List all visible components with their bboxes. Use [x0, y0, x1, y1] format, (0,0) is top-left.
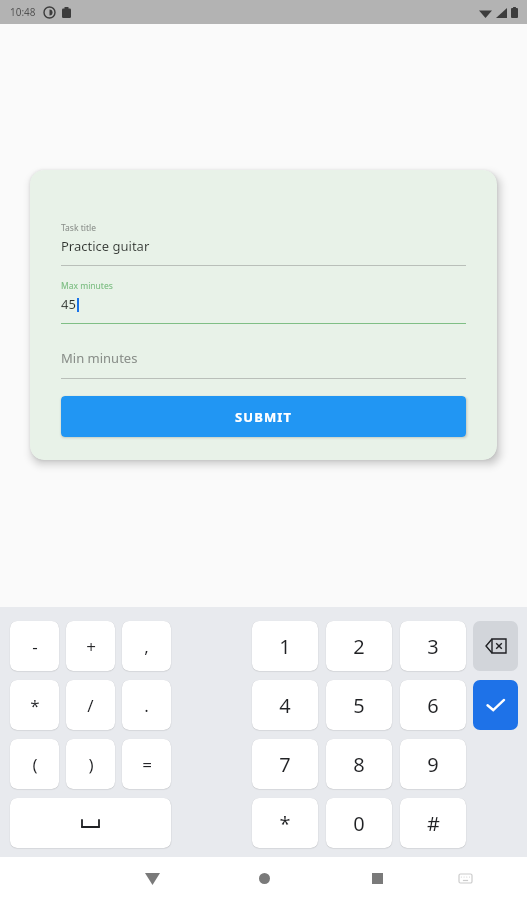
- button[interactable]: Back: [131, 857, 173, 900]
- button[interactable]: 1: [252, 621, 318, 671]
- button[interactable]: Switch keyboard: [447, 857, 483, 900]
- button[interactable]: 0: [326, 798, 392, 848]
- staticText: 9: [427, 751, 439, 778]
- button[interactable]: #: [400, 798, 466, 848]
- button[interactable]: Max minutes: [61, 280, 466, 324]
- staticText: Practice guitar: [61, 237, 150, 255]
- staticText: ): [88, 753, 94, 776]
- staticText: (: [32, 753, 38, 776]
- button[interactable]: -: [10, 621, 59, 671]
- staticText: *: [30, 694, 40, 717]
- button[interactable]: Home: [243, 857, 285, 900]
- staticText: Min minutes: [61, 349, 138, 367]
- staticText: 7: [279, 751, 291, 778]
- staticText: 0: [353, 810, 365, 837]
- staticText: *: [279, 810, 291, 837]
- button[interactable]: +: [66, 621, 115, 671]
- staticText: #: [427, 810, 440, 837]
- staticText: Max minutes: [61, 280, 113, 292]
- staticText: 3: [427, 633, 439, 660]
- staticText: 8: [353, 751, 365, 778]
- button[interactable]: *: [10, 680, 59, 730]
- staticText: 10:48: [10, 5, 36, 19]
- button[interactable]: .: [122, 680, 171, 730]
- staticText: Task title: [61, 222, 96, 234]
- button[interactable]: 2: [326, 621, 392, 671]
- button[interactable]: Space: [10, 798, 171, 848]
- button[interactable]: ): [66, 739, 115, 789]
- button[interactable]: Task title: [61, 222, 466, 266]
- staticText: =: [142, 753, 152, 776]
- button[interactable]: 6: [400, 680, 466, 730]
- staticText: /: [87, 694, 94, 717]
- button[interactable]: =: [122, 739, 171, 789]
- staticText: 4: [279, 692, 291, 719]
- staticText: 2: [353, 633, 365, 660]
- button[interactable]: Enter: [473, 680, 518, 730]
- button[interactable]: Recent apps: [356, 857, 398, 900]
- button[interactable]: 3: [400, 621, 466, 671]
- button[interactable]: 5: [326, 680, 392, 730]
- button[interactable]: Min minutes: [61, 338, 466, 379]
- button[interactable]: Backspace: [473, 621, 518, 671]
- staticText: +: [86, 635, 96, 658]
- button[interactable]: 4: [252, 680, 318, 730]
- button[interactable]: (: [10, 739, 59, 789]
- staticText: 1: [279, 633, 291, 660]
- staticText: 6: [427, 692, 439, 719]
- staticText: SUBMIT: [235, 408, 293, 426]
- button[interactable]: 9: [400, 739, 466, 789]
- button[interactable]: SUBMIT: [61, 396, 466, 437]
- staticText: -: [32, 635, 38, 658]
- button[interactable]: /: [66, 680, 115, 730]
- staticText: 45: [61, 295, 76, 313]
- staticText: ,: [144, 635, 149, 658]
- staticText: .: [144, 694, 149, 717]
- button[interactable]: ,: [122, 621, 171, 671]
- button[interactable]: 8: [326, 739, 392, 789]
- button[interactable]: 7: [252, 739, 318, 789]
- staticText: 5: [353, 692, 365, 719]
- button[interactable]: *: [252, 798, 318, 848]
